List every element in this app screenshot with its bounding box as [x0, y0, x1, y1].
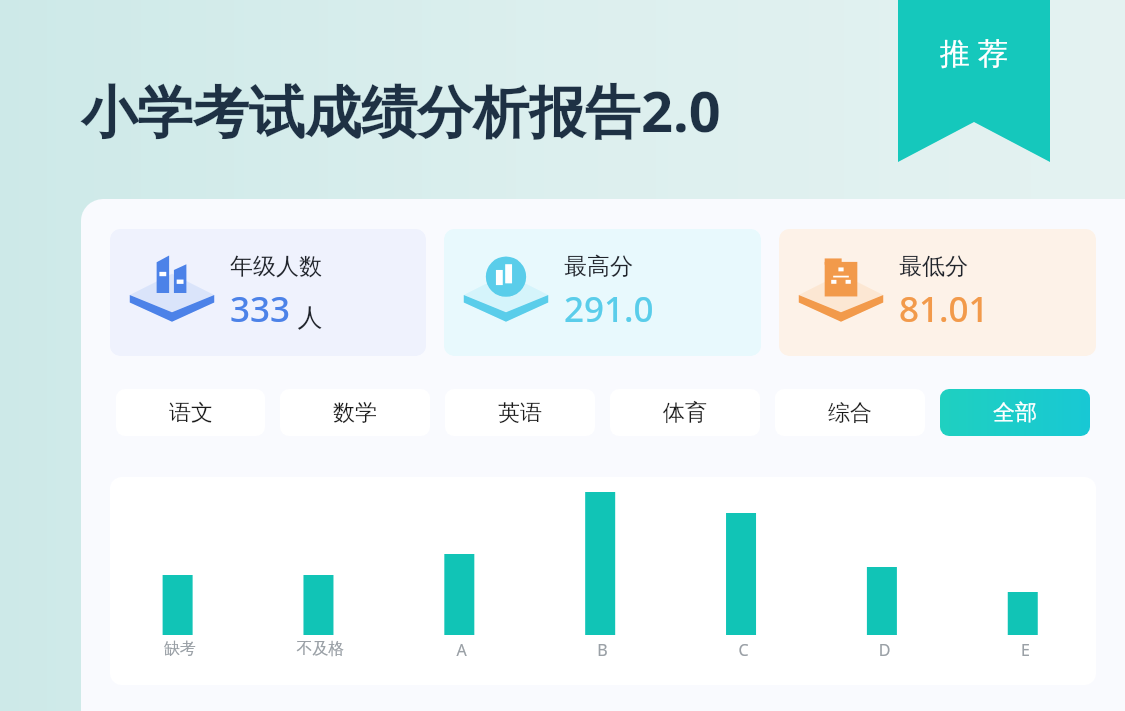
staticText: 年级人数: [230, 252, 322, 281]
staticText: 最高分: [564, 252, 633, 281]
staticText: C: [673, 639, 814, 661]
staticText: 全部: [993, 399, 1037, 427]
staticText: 不及格: [250, 639, 391, 659]
button[interactable]: 体育: [610, 389, 760, 436]
staticText: 体育: [663, 399, 707, 427]
staticText: 语文: [169, 399, 213, 427]
staticText: 综合: [828, 399, 872, 427]
button[interactable]: 推荐: [898, 0, 1050, 162]
button[interactable]: 最高分: [444, 229, 761, 356]
staticText: 81.01: [899, 285, 989, 333]
button[interactable]: 年级人数: [110, 229, 426, 356]
staticText: 人: [291, 299, 323, 333]
button[interactable]: 综合: [775, 389, 925, 436]
staticText: 最低分: [899, 252, 968, 281]
button[interactable]: 数学: [280, 389, 430, 436]
staticText: A: [391, 639, 532, 661]
staticText: B: [532, 639, 673, 661]
staticText: 291.0: [564, 285, 654, 333]
button[interactable]: 全部: [940, 389, 1090, 436]
staticText: D: [814, 639, 955, 661]
staticText: 小学考试成绩分析报告2.0: [81, 72, 721, 148]
staticText: 缺考: [110, 639, 250, 659]
staticText: 推 荐: [940, 32, 1008, 73]
staticText: E: [955, 639, 1096, 661]
staticText: 333: [230, 285, 291, 333]
staticText: 数学: [333, 399, 377, 427]
button[interactable]: 最低分: [779, 229, 1096, 356]
staticText: 英语: [498, 399, 542, 427]
button[interactable]: 语文: [116, 389, 265, 436]
button[interactable]: 英语: [445, 389, 595, 436]
